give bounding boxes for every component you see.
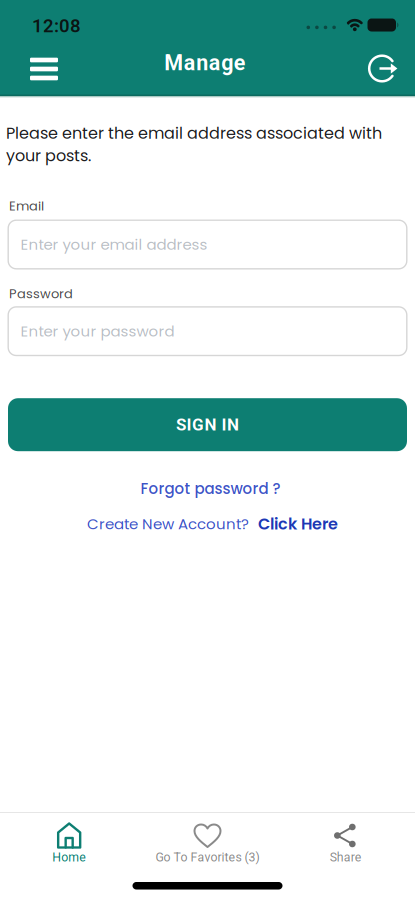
staticText: Password (9, 284, 73, 303)
button[interactable]: Go To Favorites (3) (138, 822, 277, 864)
button[interactable]: Log Out (366, 54, 415, 88)
staticText: Enter your password (20, 321, 174, 342)
staticText: 12:08 (32, 15, 81, 37)
button[interactable]: SIGN IN (8, 398, 407, 451)
staticText: Manage (164, 50, 246, 76)
staticText: SIGN IN (176, 415, 239, 435)
staticText: Create New Account? (87, 513, 249, 534)
textField[interactable] (7, 219, 407, 269)
button[interactable]: Create New Account? (82, 513, 333, 535)
staticText: Please enter the email address associate… (6, 122, 382, 167)
button[interactable]: Menu (0, 60, 70, 82)
staticText: Go To Favorites (3) (155, 850, 259, 864)
staticText: Enter your email address (20, 234, 207, 255)
textField[interactable] (7, 306, 407, 356)
staticText: Share (330, 850, 362, 864)
button[interactable]: Share (277, 822, 415, 864)
button[interactable]: Home (0, 822, 138, 864)
staticText: Click Here (258, 513, 338, 535)
staticText: Home (52, 850, 86, 864)
staticText: Email (9, 197, 44, 215)
staticText: Forgot password ? (140, 478, 280, 499)
button[interactable]: Forgot password ? (137, 478, 277, 499)
